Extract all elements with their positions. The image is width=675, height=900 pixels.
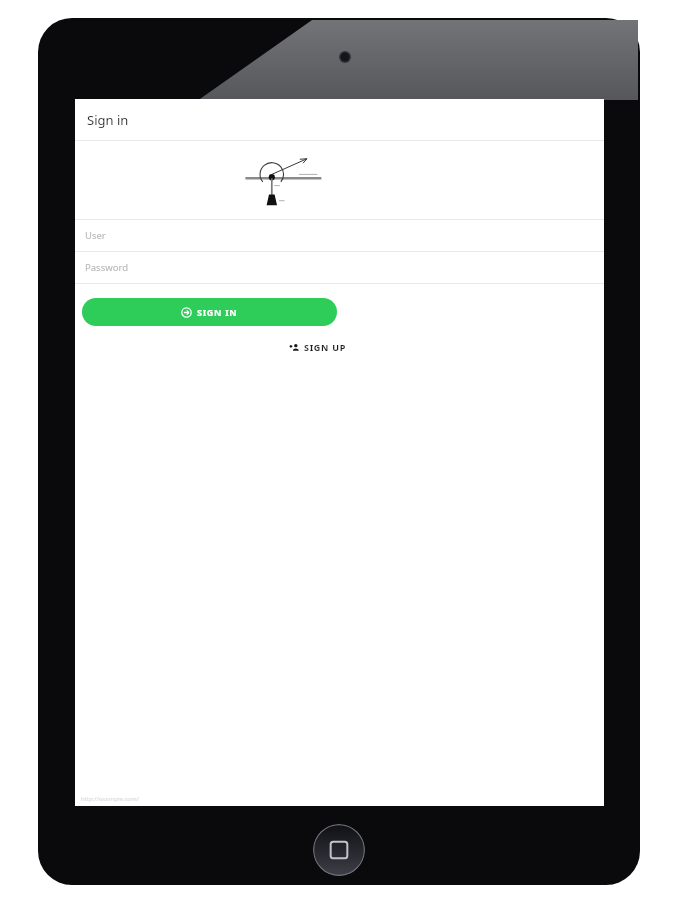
staticText: http://example.com/: [81, 795, 139, 803]
staticText: Sign in: [87, 111, 129, 129]
button[interactable]: SIGN IN: [82, 298, 337, 326]
staticText: SIGN UP: [304, 341, 346, 353]
button[interactable]: Password: [75, 252, 604, 283]
staticText: Password: [85, 261, 128, 274]
staticText: SIGN IN: [197, 306, 238, 318]
staticText: User: [85, 229, 106, 242]
button[interactable]: User: [75, 220, 604, 251]
button[interactable]: SIGN UP: [285, 339, 350, 355]
button[interactable]: Home: [313, 824, 365, 876]
